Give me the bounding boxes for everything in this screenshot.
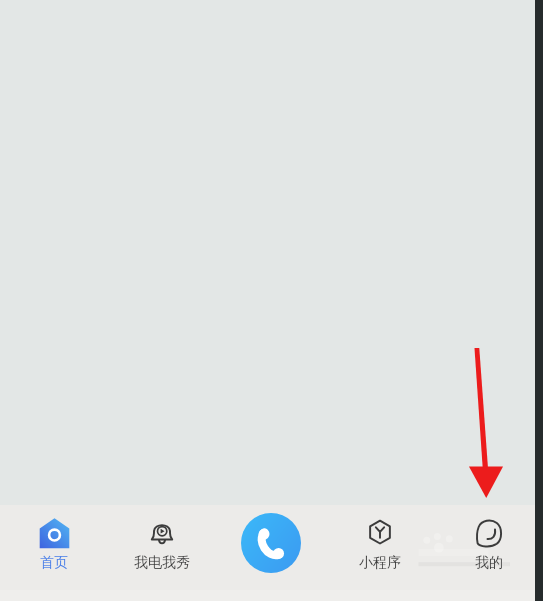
button[interactable]: My Show — [108, 505, 216, 590]
staticText: 我的 — [475, 554, 503, 572]
button[interactable]: Me — [434, 505, 543, 590]
staticText: 我电我秀 — [134, 554, 190, 572]
button[interactable]: Call — [241, 513, 301, 573]
button[interactable]: Home — [0, 505, 108, 590]
staticText: 首页 — [40, 554, 68, 572]
staticText: 小程序 — [359, 554, 401, 572]
button[interactable]: Mini Programs — [325, 505, 434, 590]
